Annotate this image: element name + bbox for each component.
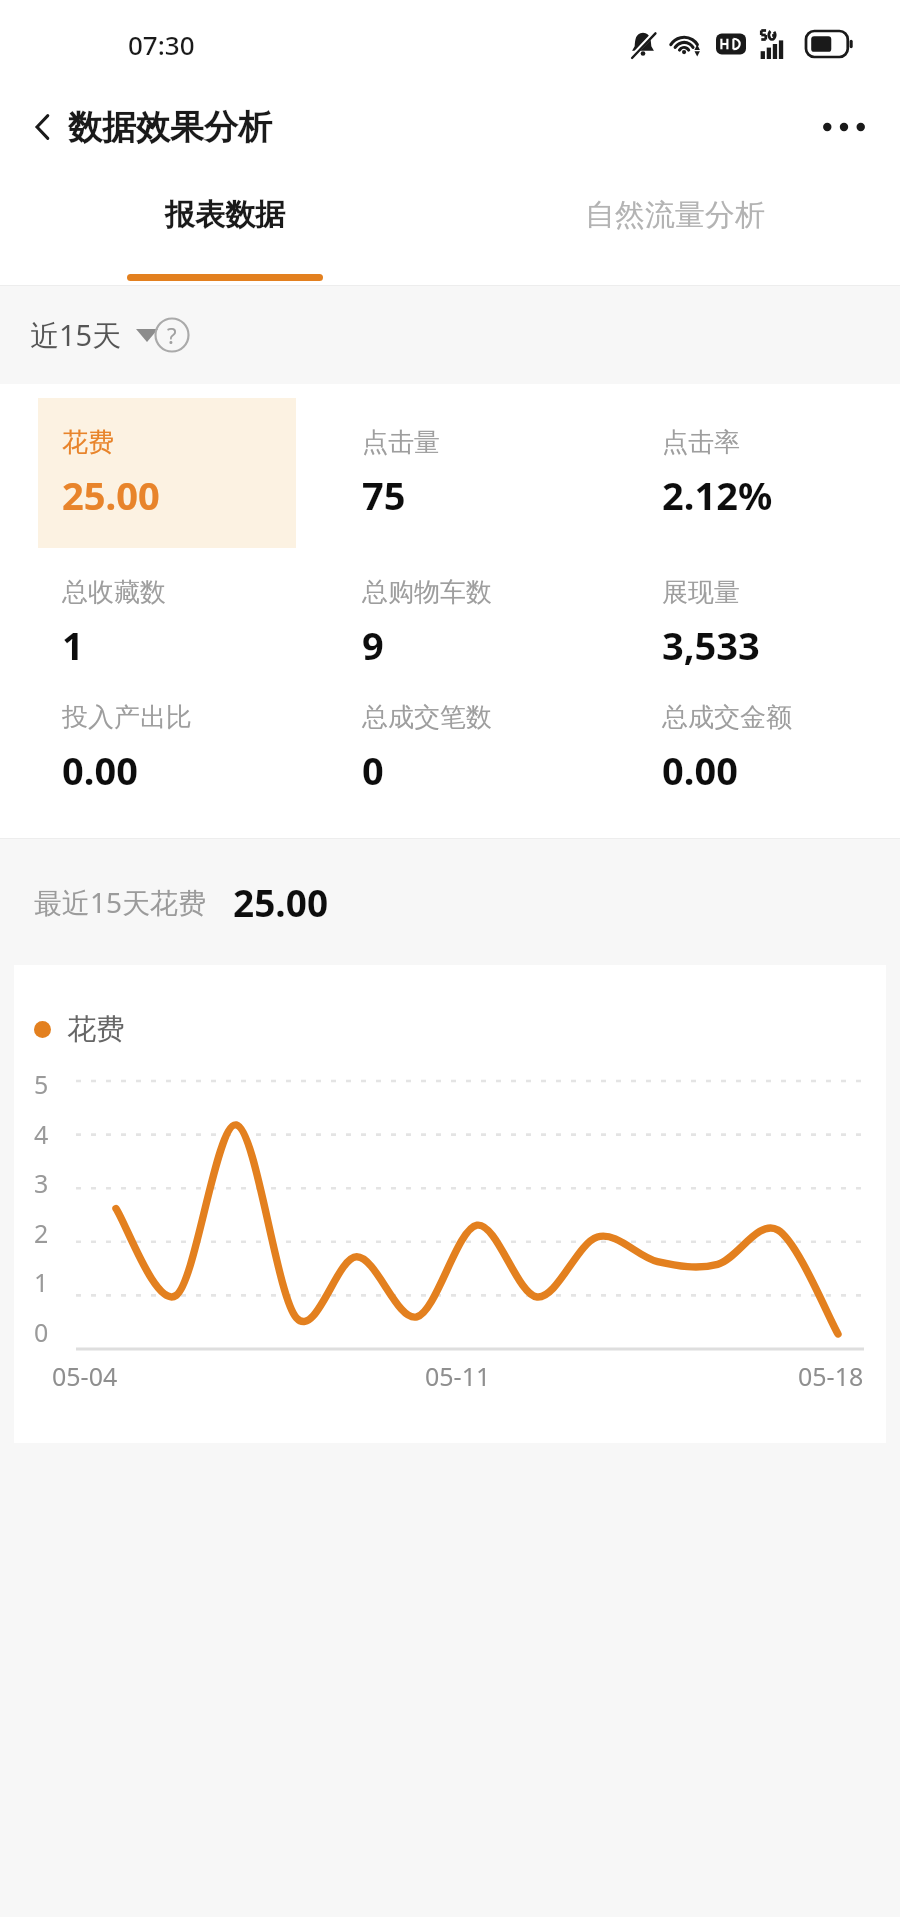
staticText: 总成交笔数: [362, 701, 492, 734]
button[interactable]: 总成交笔数: [338, 673, 596, 798]
button[interactable]: Back: [12, 96, 74, 158]
staticText: 数据效果分析: [68, 106, 272, 149]
staticText: 5: [34, 1067, 49, 1101]
staticText: ?: [167, 320, 177, 350]
button[interactable]: 投入产出比: [38, 673, 296, 798]
staticText: 07:30: [128, 27, 195, 62]
staticText: 点击量: [362, 426, 440, 459]
staticText: 0: [34, 1315, 49, 1349]
staticText: 总购物车数: [362, 576, 492, 609]
staticText: 花费: [67, 1011, 125, 1048]
staticText: 05-18: [798, 1359, 864, 1393]
staticText: 投入产出比: [62, 701, 192, 734]
staticText: 花费: [62, 426, 114, 459]
staticText: 05-04: [52, 1359, 118, 1393]
staticText: 总收藏数: [62, 576, 166, 609]
staticText: 3,533: [662, 619, 760, 671]
staticText: 4: [34, 1117, 49, 1151]
staticText: 点击率: [662, 426, 740, 459]
staticText: 1: [34, 1265, 49, 1299]
button[interactable]: 自然流量分析: [450, 168, 900, 286]
staticText: 2.12%: [662, 469, 773, 521]
button[interactable]: 总成交金额: [638, 673, 896, 798]
staticText: 展现量: [662, 576, 740, 609]
staticText: 报表数据: [165, 196, 285, 234]
staticText: 自然流量分析: [585, 196, 765, 234]
button[interactable]: 报表数据: [0, 168, 450, 286]
button[interactable]: 总购物车数: [338, 548, 596, 673]
button[interactable]: 花费: [38, 398, 296, 548]
staticText: 最近15天花费: [34, 883, 207, 921]
staticText: 0.00: [662, 744, 738, 796]
button[interactable]: More options: [808, 91, 880, 163]
staticText: 75: [362, 469, 406, 521]
staticText: 3: [34, 1166, 49, 1200]
staticText: 9: [362, 619, 384, 671]
button[interactable]: 点击量: [338, 398, 596, 548]
staticText: 1: [62, 619, 84, 671]
staticText: 总成交金额: [662, 701, 792, 734]
button[interactable]: 点击率: [638, 398, 896, 548]
button[interactable]: 总收藏数: [38, 548, 296, 673]
button[interactable]: Help: [144, 307, 200, 363]
staticText: 2: [34, 1216, 49, 1250]
staticText: 05-11: [425, 1359, 491, 1393]
staticText: 0.00: [62, 744, 138, 796]
button[interactable]: 近15天: [30, 315, 158, 355]
staticText: 25.00: [233, 877, 329, 927]
staticText: 近15天: [30, 315, 122, 355]
staticText: 0: [362, 744, 384, 796]
staticText: 25.00: [62, 469, 160, 521]
button[interactable]: 展现量: [638, 548, 896, 673]
